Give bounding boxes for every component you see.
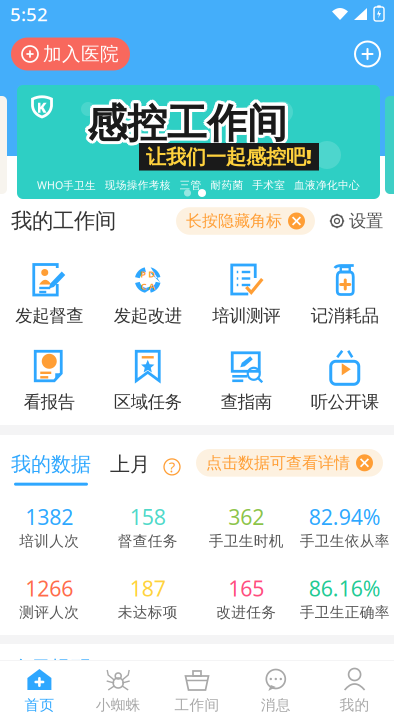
button[interactable]: 看报告	[0, 348, 98, 413]
staticText: 测评人次	[19, 603, 79, 621]
staticText: 加入医院	[43, 42, 119, 65]
staticText: 我的工作间	[11, 208, 116, 234]
button[interactable]: 点击数据可查看详情	[196, 449, 383, 486]
staticText: 小蜘蛛	[96, 696, 141, 714]
button[interactable]: 158	[98, 503, 197, 550]
staticText: 手卫生依从率	[300, 532, 390, 550]
staticText: 发起督查	[15, 305, 83, 326]
button[interactable]: 362	[197, 503, 295, 550]
staticText: 耐药菌	[210, 179, 243, 192]
button[interactable]: 加入医院	[11, 37, 130, 70]
staticText: ?	[169, 457, 175, 477]
staticText: 手卫生时机	[209, 532, 284, 550]
button[interactable]: Add	[352, 38, 383, 69]
staticText: 感控工作间	[90, 97, 290, 146]
staticText: 感控工作间	[85, 96, 285, 145]
staticText: 感控工作间	[87, 96, 287, 145]
staticText: 手术室	[252, 179, 285, 192]
button[interactable]: K	[17, 85, 380, 199]
staticText: 82.94%	[309, 503, 381, 531]
staticText: 督查任务	[118, 532, 178, 550]
button[interactable]: 长按隐藏角标	[176, 207, 315, 235]
button[interactable]: 165	[197, 574, 295, 621]
staticText: 362	[228, 503, 264, 531]
staticText: 今日提醒	[11, 656, 91, 680]
staticText: 培训测评	[212, 305, 280, 326]
staticText: 感控工作间	[87, 102, 287, 151]
staticText: 187	[130, 574, 166, 602]
staticText: 让我们一起感控吧!	[146, 143, 312, 170]
staticText: 长按隐藏角标	[186, 211, 282, 231]
staticText: 消息	[261, 696, 291, 714]
button[interactable]: 消息	[236, 661, 315, 717]
button[interactable]: 区域任务	[98, 348, 197, 413]
button[interactable]: 上月	[91, 452, 150, 486]
staticText: WHO手卫生	[37, 178, 96, 192]
staticText: A	[149, 280, 155, 292]
staticText: 改进任务	[216, 603, 276, 621]
staticText: 感控工作间	[84, 97, 284, 146]
button[interactable]: 187	[98, 574, 197, 621]
staticText: 感控工作间	[85, 102, 285, 151]
button[interactable]: 工作间	[158, 661, 236, 717]
staticText: 1382	[25, 503, 73, 531]
staticText: 158	[130, 503, 166, 531]
button[interactable]: 我的	[315, 661, 394, 717]
button[interactable]: 82.94%	[295, 503, 394, 550]
staticText: 查指南	[221, 391, 272, 413]
staticText: 感控工作间	[90, 101, 290, 150]
staticText: 感控工作间	[89, 102, 289, 151]
staticText: 感控工作间	[89, 96, 289, 145]
staticText: 感控工作间	[84, 99, 284, 148]
staticText: 上月	[110, 452, 150, 477]
staticText: 更多 ›	[342, 657, 383, 679]
staticText: D	[148, 268, 155, 280]
staticText: 现场操作考核	[105, 179, 171, 192]
staticText: K	[36, 97, 46, 117]
staticText: 发起改进	[114, 305, 182, 326]
staticText: 首页	[24, 696, 54, 714]
staticText: 手卫生正确率	[300, 603, 390, 621]
staticText: 5:52	[10, 2, 48, 26]
staticText: 三管	[180, 179, 202, 192]
button[interactable]: P	[98, 262, 197, 326]
button[interactable]: 我的数据	[11, 452, 91, 486]
staticText: 感控工作间	[84, 101, 284, 150]
button[interactable]: 查指南	[197, 348, 295, 413]
staticText: 我的	[340, 696, 370, 714]
staticText: 听公开课	[311, 391, 379, 413]
staticText: 设置	[349, 210, 383, 232]
staticText: 区域任务	[114, 391, 182, 413]
button[interactable]: 记消耗品	[295, 262, 394, 326]
staticText: 我的数据	[11, 452, 91, 477]
button[interactable]: 听公开课	[295, 348, 394, 413]
button[interactable]: 1266	[0, 574, 98, 621]
button[interactable]: 首页	[0, 661, 79, 717]
staticText: 165	[228, 574, 264, 602]
button[interactable]: 86.16%	[295, 574, 394, 621]
button[interactable]: 小蜘蛛	[79, 661, 158, 717]
staticText: 记消耗品	[311, 305, 379, 326]
staticText: 1266	[25, 574, 73, 602]
staticText: 感控工作间	[87, 99, 287, 148]
staticText: 看报告	[24, 391, 75, 413]
staticText: 培训人次	[19, 532, 79, 550]
staticText: 未达标项	[118, 603, 178, 621]
button[interactable]: Help	[150, 457, 180, 486]
staticText: 点击数据可查看详情	[206, 453, 350, 473]
button[interactable]: 1382	[0, 503, 98, 550]
button[interactable]: 发起督查	[0, 262, 98, 326]
staticText: 感控工作间	[90, 99, 290, 148]
staticText: P	[140, 268, 146, 280]
button[interactable]: 培训测评	[197, 262, 295, 326]
staticText: 86.16%	[309, 574, 381, 602]
staticText: 工作间	[174, 696, 219, 714]
button[interactable]: 设置	[315, 210, 383, 232]
staticText: C	[141, 280, 147, 292]
staticText: 血液净化中心	[294, 179, 360, 192]
